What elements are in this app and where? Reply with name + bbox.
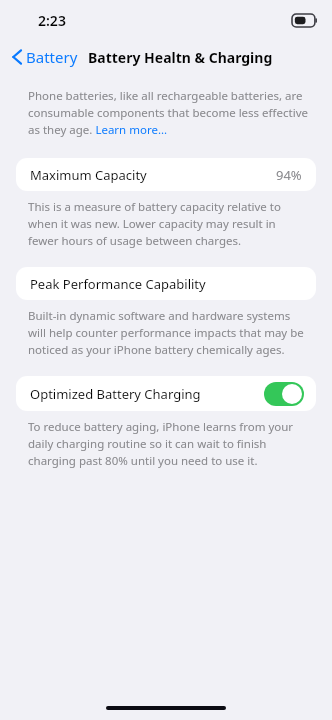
staticText: Battery Healtn & Charging [88, 48, 273, 67]
staticText: Maximum Capacity [30, 166, 147, 184]
button[interactable]: Optimized Battery Charging [16, 376, 316, 411]
button[interactable]: Phone batteries, like all rechargeable b… [28, 88, 310, 138]
staticText: Peak Performance Capability [30, 275, 206, 293]
staticText: This is a measure of battery capacity re… [28, 199, 306, 249]
staticText: Battery [26, 47, 78, 67]
staticText: 2:23 [38, 11, 66, 30]
staticText: To reduce battery aging, iPhone learns f… [28, 419, 306, 469]
staticText: Optimized Battery Charging [30, 385, 201, 403]
button[interactable]: Maximum Capacity [16, 158, 316, 191]
button[interactable]: Peak Performance Capability [16, 267, 316, 300]
button[interactable]: Battery [8, 43, 82, 71]
staticText: Built-in dynamic software and hardware s… [28, 308, 306, 358]
staticText: 94% [276, 166, 302, 184]
button[interactable]: Optimized Battery Charging toggle, on [264, 382, 304, 406]
